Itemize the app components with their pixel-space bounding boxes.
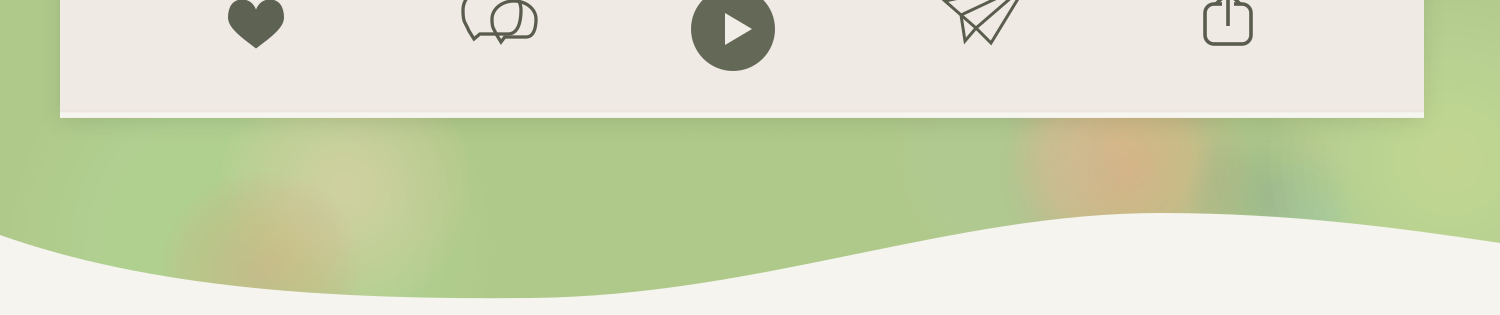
button[interactable]: Share [1179, 0, 1277, 71]
button[interactable]: Send [919, 0, 1053, 69]
button[interactable]: Comment [440, 0, 558, 69]
button[interactable]: Like [201, 0, 311, 76]
button[interactable]: Play video [667, 0, 799, 95]
